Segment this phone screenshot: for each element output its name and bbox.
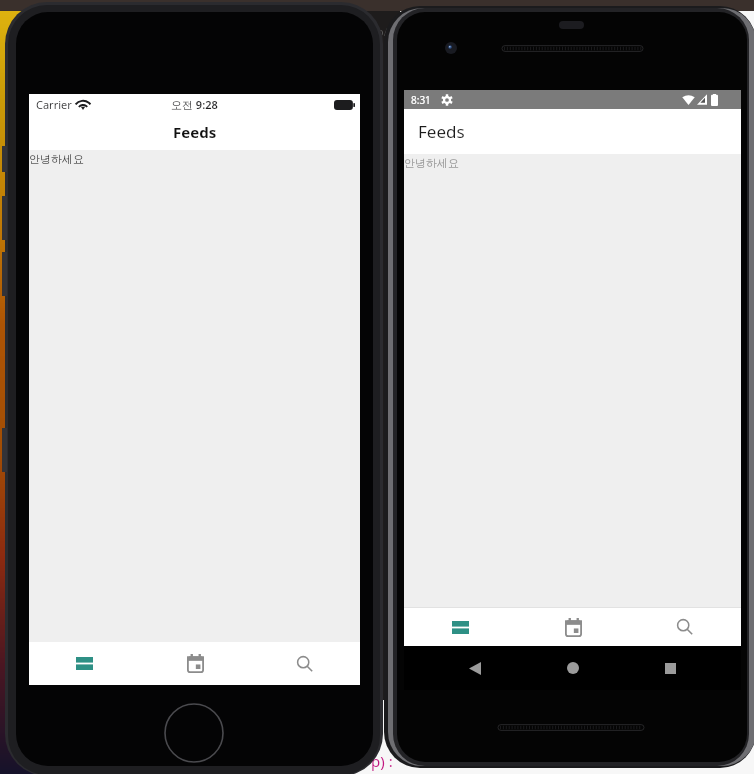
button[interactable]: Feeds — [29, 642, 140, 685]
staticText: Carrier — [36, 97, 72, 112]
button[interactable]: Calendar — [517, 608, 629, 646]
button[interactable]: Calendar — [140, 642, 250, 685]
staticText: p) : — [371, 751, 393, 771]
staticText: 8:31 — [411, 93, 431, 107]
button[interactable]: Back — [462, 655, 488, 681]
staticText: Feeds — [418, 120, 465, 143]
button[interactable]: Search — [629, 608, 741, 646]
button[interactable]: Home — [560, 655, 586, 681]
staticText: 안녕하세요 — [29, 152, 84, 166]
staticText: 오전 9:28 — [171, 97, 218, 112]
staticText: Feeds — [173, 122, 217, 142]
button[interactable]: Recents — [657, 655, 683, 681]
staticText: 안녕하세요 — [404, 156, 459, 170]
button[interactable]: Search — [250, 642, 360, 685]
button[interactable]: Feeds — [404, 608, 517, 646]
staticText: o/w — [377, 24, 397, 39]
